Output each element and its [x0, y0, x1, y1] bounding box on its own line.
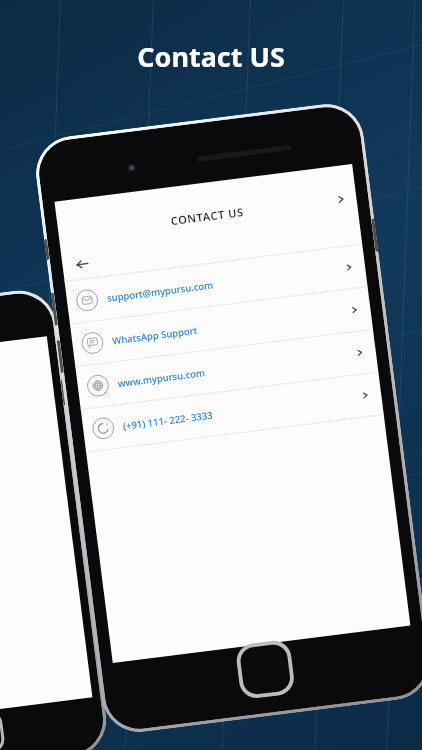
staticText: Contact US — [0, 38, 422, 75]
button[interactable]: www.mypursu.com — [75, 330, 378, 409]
staticText: www.mypursu.com — [117, 366, 206, 390]
staticText: (+91) 111- 222- 3333 — [122, 408, 214, 433]
staticText: WhatsApp Support — [112, 324, 199, 347]
button[interactable]: More — [329, 188, 351, 210]
button[interactable]: Back — [69, 251, 94, 276]
button[interactable]: support@mypursu.com — [65, 244, 367, 324]
button[interactable]: (+91) 111- 222- 3333 — [81, 372, 384, 452]
staticText: support@mypursu.com — [106, 278, 214, 305]
button[interactable]: WhatsApp Support — [70, 287, 373, 366]
staticText: CONTACT US — [170, 204, 245, 228]
